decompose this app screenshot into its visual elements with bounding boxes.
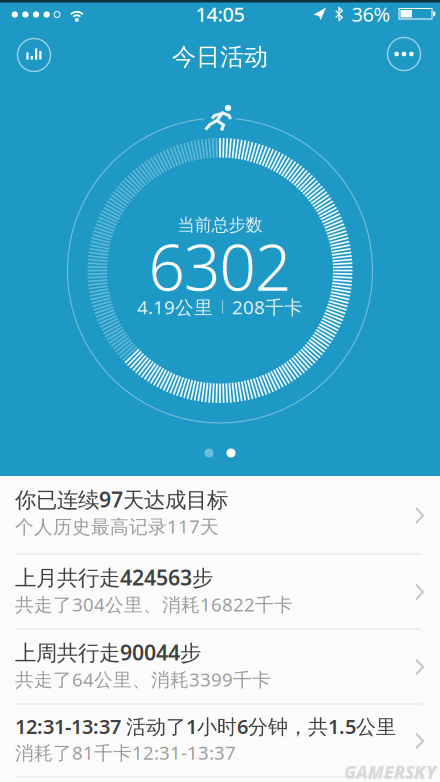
staticText: 6302	[148, 223, 292, 308]
staticText: 共走了304公里、消耗16822千卡	[15, 592, 293, 617]
staticText: 36%	[351, 1, 390, 27]
staticText: 14:05	[195, 1, 244, 27]
button[interactable]: 上月共行走424563步	[0, 554, 440, 629]
button[interactable]: 你已连续97天达成目标	[0, 476, 440, 554]
staticText: 当前总步数	[177, 214, 262, 236]
staticText: 消耗了81千卡12:31-13:37	[15, 740, 236, 765]
staticText: 上月共行走424563步	[15, 563, 213, 591]
staticText: 个人历史最高记录117天	[15, 514, 219, 539]
button[interactable]: 统计	[17, 38, 50, 71]
staticText: 12:31-13:37 活动了1小时6分钟，共1.5公里	[15, 713, 396, 740]
staticText: 4.19公里	[137, 295, 213, 319]
staticText: 你已连续97天达成目标	[15, 485, 228, 513]
button[interactable]: 12:31-13:37 活动了1小时6分钟，共1.5公里	[0, 704, 440, 777]
staticText: 今日活动	[172, 42, 268, 72]
staticText: 共走了64公里、消耗3399千卡	[15, 667, 271, 692]
staticText: 208千卡	[232, 295, 303, 319]
button[interactable]: 上周共行走90044步	[0, 629, 440, 704]
button[interactable]: 更多	[387, 37, 420, 70]
staticText: 上周共行走90044步	[15, 638, 201, 666]
staticText: GAMERSKY	[344, 760, 436, 782]
